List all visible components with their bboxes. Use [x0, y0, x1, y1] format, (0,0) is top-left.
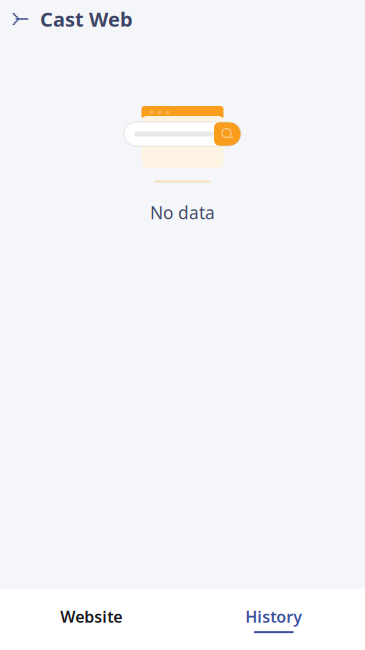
- button[interactable]: History: [182, 589, 365, 649]
- staticText: Cast Web: [40, 6, 133, 32]
- staticText: History: [245, 606, 302, 627]
- staticText: Website: [60, 606, 122, 627]
- button[interactable]: Website: [0, 589, 182, 649]
- button[interactable]: Back: [6, 4, 36, 34]
- staticText: No data: [150, 201, 215, 224]
